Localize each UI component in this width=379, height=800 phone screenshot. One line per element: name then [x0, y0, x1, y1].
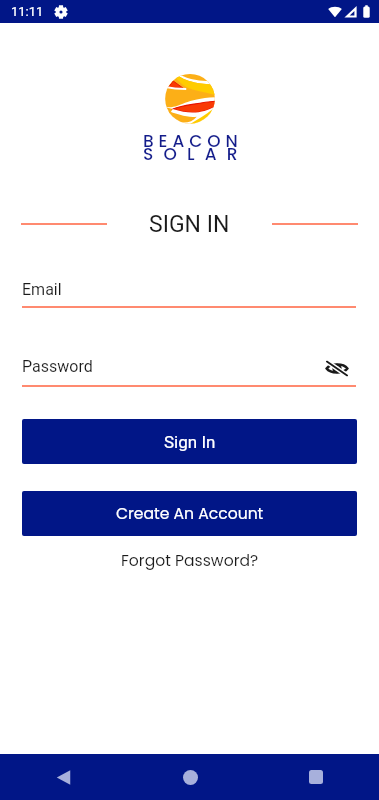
button[interactable]: Recents	[253, 754, 379, 800]
staticText: Sign In	[164, 432, 216, 452]
staticText: Create An Account	[116, 503, 264, 525]
staticText: SOLAR	[143, 142, 248, 166]
button[interactable]: Sign In	[22, 419, 357, 464]
button[interactable]: Back	[0, 754, 127, 800]
button[interactable]: Show password	[321, 354, 352, 383]
staticText: Password	[22, 357, 93, 376]
staticText: Forgot Password?	[121, 550, 259, 572]
button[interactable]: Home	[127, 754, 253, 800]
staticText: Email	[22, 280, 62, 299]
staticText: SIGN IN	[149, 211, 230, 238]
staticText: BEACON	[143, 129, 243, 153]
staticText: 11:11	[11, 4, 44, 19]
button[interactable]: Create An Account	[22, 491, 357, 536]
button[interactable]: Forgot Password?	[115, 548, 265, 574]
